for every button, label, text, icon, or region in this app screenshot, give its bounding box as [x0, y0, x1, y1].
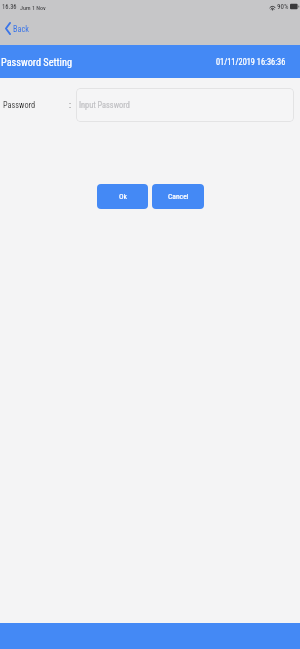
other: Wi-Fi: [269, 3, 276, 10]
other: Battery 90 percent: [290, 3, 300, 10]
staticText: 16.36: [2, 3, 17, 11]
button[interactable]: Cancel: [152, 184, 204, 209]
staticText: Ok: [119, 192, 127, 201]
staticText: Cancel: [168, 192, 189, 201]
button[interactable]: Ok: [97, 184, 148, 209]
staticText: Password: [3, 100, 69, 110]
staticText: 01/11/2019 16:36:36: [216, 57, 286, 67]
button[interactable]: Back: [3, 21, 31, 36]
staticText: Jum 1 Nov: [20, 4, 46, 11]
staticText: :: [69, 100, 71, 110]
staticText: Password Setting: [1, 56, 73, 68]
button[interactable]: Input Password: [76, 88, 294, 122]
staticText: Input Password: [79, 100, 130, 110]
staticText: Back: [13, 24, 29, 34]
staticText: 90%: [277, 3, 289, 11]
